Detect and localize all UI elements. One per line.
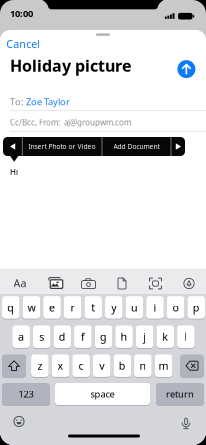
staticText: Insert Photo or Video [29, 142, 96, 151]
staticText: a [18, 330, 24, 344]
staticText: Add Document [113, 142, 159, 151]
button[interactable]: a [12, 325, 30, 348]
staticText: 10:00 [10, 7, 33, 20]
button[interactable]: 123 [2, 382, 50, 405]
staticText: c [79, 359, 84, 373]
staticText: e [49, 300, 55, 314]
button[interactable]: z [31, 354, 49, 377]
button[interactable]: k [156, 325, 174, 348]
button[interactable]: n [134, 354, 152, 377]
button[interactable]: Markup [183, 278, 194, 289]
staticText: x [57, 359, 63, 373]
button[interactable]: Dictate [181, 417, 191, 429]
button[interactable]: o [167, 296, 184, 319]
button[interactable]: Delete [180, 354, 204, 377]
button[interactable]: s [33, 325, 50, 348]
staticText: k [162, 330, 168, 344]
button[interactable]: b [113, 354, 131, 377]
button[interactable]: f [74, 325, 92, 348]
staticText: g [100, 330, 107, 344]
button[interactable]: Format [13, 276, 26, 290]
button[interactable]: y [105, 296, 123, 319]
button[interactable]: r [64, 296, 81, 319]
button[interactable]: d [53, 325, 71, 348]
button[interactable]: q [2, 296, 20, 319]
staticText: t [91, 300, 95, 314]
button[interactable]: Scan Document [149, 277, 162, 289]
button[interactable]: j [136, 325, 153, 348]
staticText: Aa [13, 276, 26, 290]
staticText: f [81, 330, 85, 344]
staticText: 123 [18, 388, 33, 400]
button[interactable]: m [155, 354, 172, 377]
staticText: u [131, 300, 138, 314]
staticText: i [153, 300, 156, 314]
staticText: h [121, 330, 128, 344]
button[interactable]: x [52, 354, 69, 377]
button[interactable]: Add Document [113, 142, 159, 151]
staticText: j [143, 330, 146, 344]
button[interactable]: Cc/Bcc, From: aj@groupwm.com [10, 117, 206, 128]
staticText: o [173, 300, 179, 314]
staticText: s [39, 330, 44, 344]
button[interactable]: c [72, 354, 90, 377]
button[interactable]: Cancel [6, 37, 40, 51]
staticText: r [71, 300, 75, 314]
staticText: Cancel [6, 37, 40, 51]
staticText: To: [10, 95, 24, 108]
button[interactable]: p [187, 296, 205, 319]
button[interactable]: Insert Photo [48, 277, 63, 289]
staticText: l [184, 330, 187, 344]
staticText: p [193, 300, 200, 314]
button[interactable]: More menu items [0, 0, 206, 445]
staticText: m [158, 359, 168, 373]
staticText: space [90, 388, 114, 400]
staticText: return [166, 388, 194, 400]
button[interactable]: space [55, 382, 150, 405]
staticText: w [27, 300, 35, 314]
button[interactable]: w [23, 296, 40, 319]
staticText: Zoe Taylor [26, 95, 70, 108]
staticText: Holiday picture [10, 55, 132, 76]
button[interactable]: h [115, 325, 133, 348]
button[interactable]: To: [10, 95, 206, 108]
button[interactable]: Add Document [117, 277, 126, 289]
staticText: n [139, 359, 146, 373]
staticText: b [119, 359, 126, 373]
button[interactable]: i [146, 296, 164, 319]
staticText: z [37, 359, 42, 373]
button[interactable]: Take Photo [81, 278, 96, 289]
button[interactable]: e [43, 296, 61, 319]
staticText: Cc/Bcc, From: aj@groupwm.com [10, 117, 131, 128]
button[interactable]: Send [177, 60, 195, 78]
button[interactable]: g [95, 325, 112, 348]
button[interactable]: Previous menu items [0, 0, 206, 445]
button[interactable]: t [84, 296, 102, 319]
button[interactable]: Shift [2, 354, 26, 377]
button[interactable]: l [177, 325, 195, 348]
staticText: Hi [10, 167, 18, 177]
button[interactable]: v [93, 354, 110, 377]
staticText: d [59, 330, 66, 344]
staticText: y [111, 300, 116, 314]
button[interactable]: return [156, 382, 204, 405]
staticText: q [7, 300, 14, 314]
button[interactable]: Emoji [13, 416, 24, 427]
staticText: v [99, 359, 104, 373]
button[interactable]: Insert Photo or Video [29, 142, 96, 151]
button[interactable]: u [126, 296, 143, 319]
